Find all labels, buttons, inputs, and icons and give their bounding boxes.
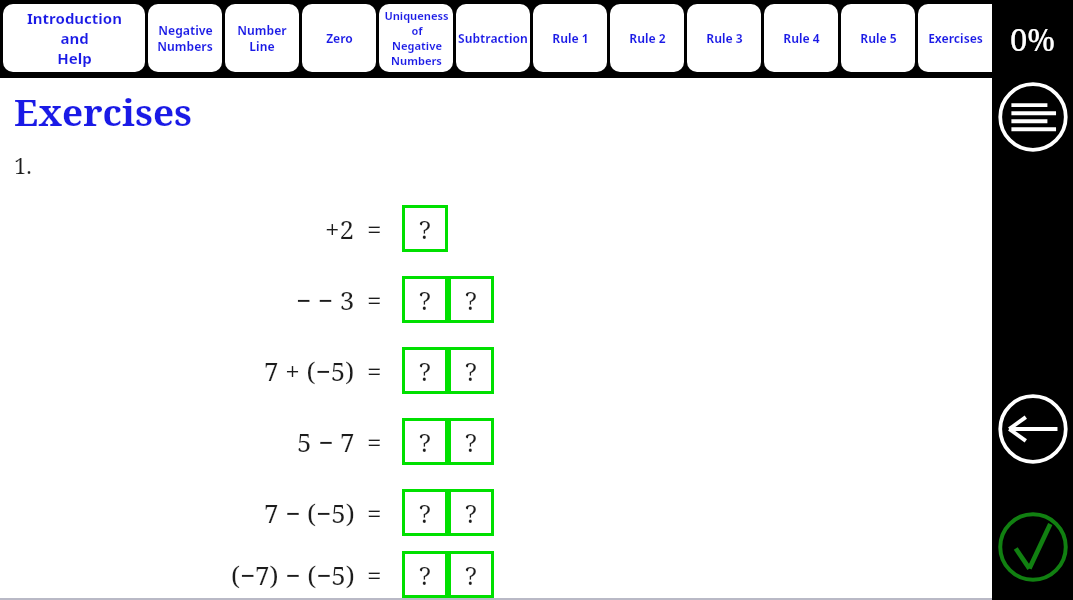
staticText: Rule 1 [552, 30, 589, 46]
staticText: = [367, 353, 382, 388]
staticText: ? [419, 283, 431, 317]
staticText: Negative [158, 22, 213, 38]
staticText: = [367, 211, 382, 246]
staticText: Numbers [157, 38, 213, 54]
staticText: 1. [14, 150, 32, 180]
staticText: − − 3 [296, 282, 355, 317]
staticText: Help [57, 48, 92, 68]
button[interactable]: Show text [994, 78, 1072, 156]
button[interactable]: Introduction [3, 4, 145, 72]
button[interactable]: ? [451, 554, 491, 595]
button[interactable]: ? [451, 279, 491, 320]
staticText: +2 [325, 211, 355, 246]
staticText: Rule 3 [706, 30, 743, 46]
button[interactable]: ? [451, 350, 491, 391]
staticText: 5 − 7 [297, 424, 355, 459]
button[interactable]: Back [994, 390, 1072, 468]
staticText: and [60, 28, 89, 48]
button[interactable]: Rule 5 [841, 4, 915, 72]
staticText: of [411, 23, 423, 38]
staticText: ? [465, 558, 477, 592]
button[interactable]: ? [451, 492, 491, 533]
staticText: = [367, 282, 382, 317]
button[interactable]: Rule 4 [764, 4, 838, 72]
staticText: Rule 4 [783, 30, 820, 46]
button[interactable]: Check answers [994, 508, 1072, 586]
button[interactable]: Subtraction [456, 4, 530, 72]
staticText: Subtraction [458, 30, 528, 46]
staticText: Negative [392, 38, 442, 53]
button[interactable]: Zero [302, 4, 376, 72]
button[interactable]: ? [405, 350, 445, 391]
staticText: = [367, 495, 382, 530]
staticText: ? [419, 212, 431, 246]
button[interactable]: Rule 2 [610, 4, 684, 72]
button[interactable]: Uniqueness [379, 4, 453, 72]
staticText: ? [465, 283, 477, 317]
button[interactable]: ? [405, 421, 445, 462]
button[interactable]: Negative [148, 4, 222, 72]
button[interactable]: ? [405, 554, 445, 595]
staticText: Number [237, 22, 287, 38]
staticText: ? [419, 558, 431, 592]
staticText: ? [419, 354, 431, 388]
staticText: = [367, 424, 382, 459]
staticText: 0% [1010, 18, 1056, 60]
staticText: ? [419, 496, 431, 530]
button[interactable]: Number [225, 4, 299, 72]
button[interactable]: ? [405, 208, 445, 249]
button[interactable]: Rule 3 [687, 4, 761, 72]
button[interactable]: ? [405, 279, 445, 320]
staticText: Zero [326, 30, 353, 46]
button[interactable]: ? [405, 492, 445, 533]
staticText: 7 − (−5) [264, 495, 355, 530]
button[interactable]: Exercises [918, 4, 992, 72]
staticText: = [367, 557, 382, 592]
staticText: ? [465, 425, 477, 459]
staticText: Rule 5 [860, 30, 897, 46]
staticText: 7 + (−5) [264, 353, 355, 388]
staticText: Uniqueness [384, 8, 449, 23]
staticText: Line [249, 38, 275, 54]
staticText: (−7) − (−5) [231, 557, 355, 592]
button[interactable]: ? [451, 421, 491, 462]
staticText: ? [465, 354, 477, 388]
staticText: Introduction [27, 8, 122, 28]
staticText: Rule 2 [629, 30, 666, 46]
staticText: ? [419, 425, 431, 459]
staticText: Numbers [391, 53, 442, 68]
staticText: Exercises [928, 30, 983, 46]
staticText: ? [465, 496, 477, 530]
staticText: Exercises [14, 86, 192, 136]
button[interactable]: Rule 1 [533, 4, 607, 72]
